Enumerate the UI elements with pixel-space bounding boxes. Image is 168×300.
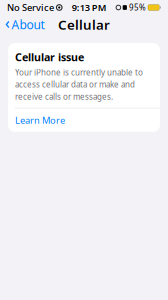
staticText: Cellular: [58, 16, 110, 33]
staticText: No Service: [7, 1, 54, 14]
staticText: 95%: [129, 2, 146, 13]
button[interactable]: About: [0, 12, 44, 36]
staticText: 9:13 PM: [72, 1, 107, 14]
button[interactable]: Learn More: [8, 108, 160, 132]
staticText: About: [11, 16, 44, 32]
staticText: Learn More: [15, 114, 65, 126]
staticText: Your iPhone is currently unable to acces…: [15, 67, 143, 102]
staticText: Cellular issue: [15, 50, 84, 64]
